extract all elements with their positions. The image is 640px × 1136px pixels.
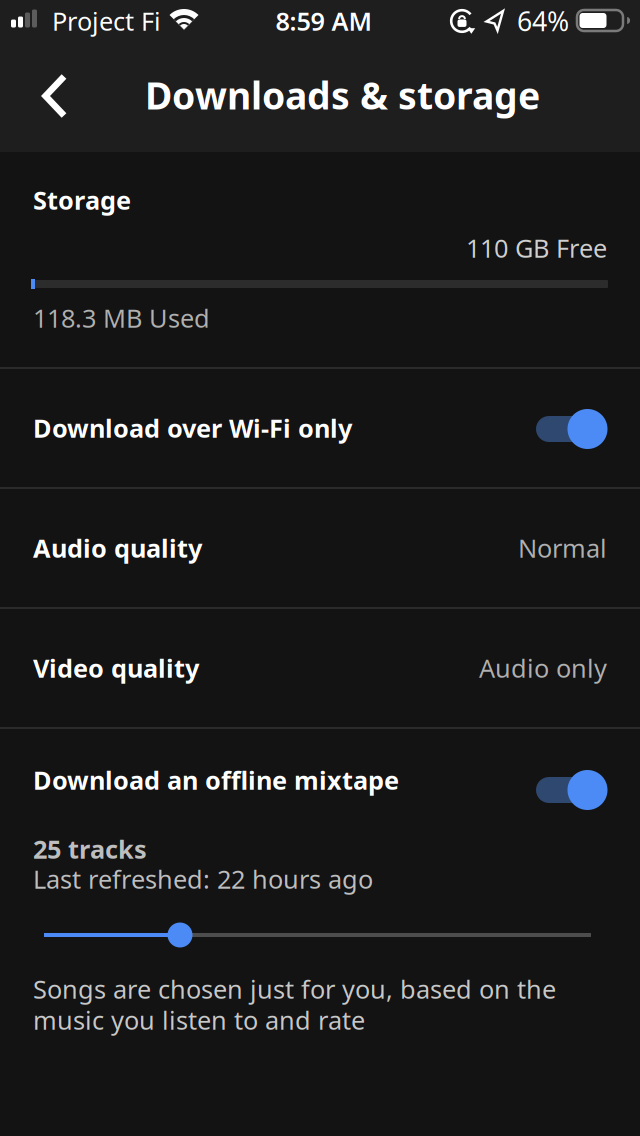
- staticText: Songs are chosen just for you, based on …: [33, 972, 556, 1006]
- button[interactable]: Audio quality: [0, 489, 640, 607]
- staticText: Download over Wi-Fi only: [33, 411, 352, 445]
- staticText: Last refreshed: 22 hours ago: [33, 862, 373, 896]
- staticText: music you listen to and rate: [33, 1003, 365, 1037]
- staticText: 8:59 AM: [275, 4, 372, 38]
- staticText: Normal: [518, 531, 607, 565]
- staticText: Downloads & storage: [145, 70, 540, 120]
- staticText: 118.3 MB Used: [33, 301, 210, 335]
- staticText: Audio only: [479, 651, 607, 685]
- button[interactable]: [26, 72, 82, 120]
- staticText: Video quality: [33, 651, 199, 685]
- staticText: 110 GB Free: [466, 231, 607, 265]
- button[interactable]: Download an offline mixtape: [0, 729, 640, 831]
- staticText: Audio quality: [33, 531, 202, 565]
- button[interactable]: Download over Wi-Fi only: [0, 369, 640, 487]
- staticText: Project Fi: [52, 4, 161, 38]
- button[interactable]: [536, 770, 607, 810]
- staticText: 25 tracks: [33, 832, 147, 866]
- button[interactable]: [536, 409, 607, 449]
- button[interactable]: Video quality: [0, 609, 640, 727]
- button[interactable]: [26, 920, 626, 950]
- staticText: 64%: [517, 3, 569, 39]
- staticText: Storage: [33, 183, 131, 217]
- staticText: Download an offline mixtape: [33, 763, 399, 797]
